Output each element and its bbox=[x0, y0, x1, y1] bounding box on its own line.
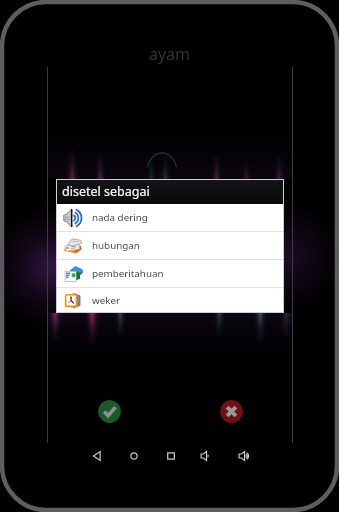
button[interactable]: weker bbox=[56, 288, 284, 313]
staticText: pemberitahuan bbox=[92, 267, 164, 280]
button[interactable]: nada dering bbox=[56, 204, 284, 231]
button[interactable]: Back bbox=[86, 445, 108, 467]
staticText: disetel sebagai bbox=[62, 183, 150, 200]
button[interactable]: Recents bbox=[160, 445, 182, 467]
staticText: weker bbox=[92, 294, 121, 307]
button[interactable]: hubungan bbox=[56, 232, 284, 259]
staticText: hubungan bbox=[92, 239, 140, 252]
staticText: ayam bbox=[0, 43, 339, 65]
staticText: nada dering bbox=[92, 211, 148, 224]
button[interactable]: pemberitahuan bbox=[56, 260, 284, 287]
button[interactable]: Confirm bbox=[98, 400, 121, 423]
button[interactable]: Volume down bbox=[196, 445, 218, 467]
button[interactable]: Home bbox=[123, 445, 145, 467]
button[interactable]: Volume up bbox=[234, 445, 256, 467]
button[interactable]: Cancel bbox=[220, 400, 243, 423]
